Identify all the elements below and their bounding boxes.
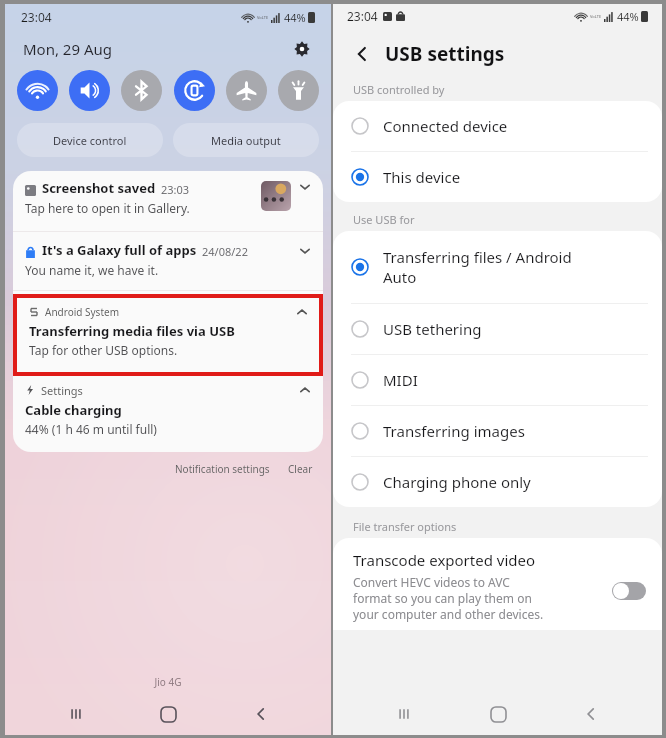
button[interactable]: Transcode exported video: [333, 538, 662, 630]
button[interactable]: Back: [239, 693, 283, 735]
button[interactable]: Charging phone only: [333, 457, 662, 507]
staticText: Tap here to open it in Gallery.: [25, 200, 190, 216]
staticText: Charging phone only: [383, 472, 531, 492]
button[interactable]: Transferring files / Android Auto: [333, 231, 662, 303]
button[interactable]: Connected device: [333, 101, 662, 151]
button[interactable]: Sound: [69, 70, 110, 111]
button[interactable]: Airplane mode: [226, 70, 267, 111]
staticText: Use USB for: [353, 212, 415, 227]
staticText: Transferring images: [383, 421, 525, 441]
staticText: You name it, we have it.: [25, 262, 159, 278]
button[interactable]: Recents: [54, 693, 98, 735]
staticText: 44%: [284, 10, 306, 25]
staticText: VoLTE: [257, 15, 269, 20]
staticText: Clear: [288, 462, 313, 476]
button[interactable]: Transferring images: [333, 406, 662, 456]
button[interactable]: Transcode exported video toggle: [612, 582, 646, 600]
button[interactable]: Android System: [17, 298, 319, 372]
button[interactable]: Recents: [382, 693, 426, 735]
button[interactable]: This device: [333, 152, 662, 202]
staticText: Mon, 29 Aug: [23, 39, 113, 59]
staticText: Notification settings: [175, 462, 270, 476]
button[interactable]: Back: [347, 39, 377, 69]
staticText: It's a Galaxy full of apps: [42, 241, 197, 259]
staticText: 24/08/22: [202, 244, 248, 259]
staticText: Convert HEVC videos to AVC format so you…: [353, 574, 604, 622]
staticText: MIDI: [383, 370, 418, 390]
staticText: Android System: [45, 305, 120, 319]
staticText: USB controlled by: [353, 82, 445, 97]
button[interactable]: USB tethering: [333, 304, 662, 354]
button[interactable]: Settings: [13, 374, 323, 452]
staticText: Connected device: [383, 116, 508, 136]
staticText: USB tethering: [383, 319, 482, 339]
button[interactable]: Back: [569, 693, 613, 735]
button[interactable]: Expand: [297, 179, 313, 195]
button[interactable]: Screenshot saved: [13, 171, 323, 231]
button[interactable]: Collapse: [297, 382, 313, 398]
staticText: 23:04: [21, 9, 52, 25]
staticText: USB settings: [385, 41, 505, 67]
button[interactable]: Device control: [17, 123, 163, 157]
staticText: Screenshot saved: [42, 179, 156, 197]
button[interactable]: Bluetooth: [121, 70, 162, 111]
button[interactable]: Auto rotate: [174, 70, 215, 111]
staticText: Transferring media files via USB: [29, 322, 235, 340]
staticText: VoLTE: [590, 14, 602, 19]
staticText: Tap for other USB options.: [29, 342, 178, 358]
staticText: Media output: [211, 133, 281, 148]
staticText: 23:04: [347, 8, 378, 24]
staticText: File transfer options: [353, 519, 457, 534]
staticText: This device: [383, 167, 461, 187]
staticText: Device control: [53, 133, 127, 148]
button[interactable]: Expand: [297, 243, 313, 259]
staticText: Cable charging: [25, 401, 122, 419]
button[interactable]: Home: [146, 693, 190, 735]
staticText: 44%: [617, 9, 639, 24]
button[interactable]: Wi-Fi: [17, 70, 58, 111]
button[interactable]: Clear: [284, 458, 317, 480]
staticText: Settings: [41, 383, 83, 398]
button[interactable]: Home: [476, 693, 520, 735]
staticText: Transcode exported video: [353, 550, 536, 570]
staticText: Transferring files / Android Auto: [383, 247, 572, 287]
button[interactable]: MIDI: [333, 355, 662, 405]
button[interactable]: Notification settings: [171, 458, 274, 480]
staticText: 23:03: [161, 182, 190, 197]
button[interactable]: Flashlight: [278, 70, 319, 111]
staticText: Jio 4G: [5, 675, 331, 689]
button[interactable]: Media output: [173, 123, 319, 157]
staticText: 44% (1 h 46 m until full): [25, 421, 157, 437]
button[interactable]: Settings: [289, 36, 315, 62]
button[interactable]: It's a Galaxy full of apps: [13, 232, 323, 290]
